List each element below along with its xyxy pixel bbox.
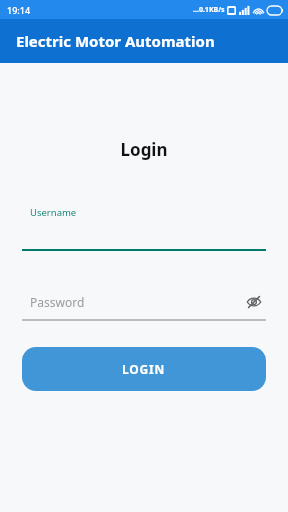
button[interactable]: Password [22,291,266,321]
staticText: Login [0,138,288,161]
staticText: Username [30,206,77,219]
staticText: ...0.1KB/s [193,5,225,15]
staticText: Electric Motor Automation [16,31,215,51]
button[interactable]: Toggle password visibility [242,291,266,313]
staticText: LOGIN [122,361,166,377]
staticText: 19:14 [7,4,31,16]
button[interactable]: LOGIN [22,347,266,391]
button[interactable]: Username [22,206,266,251]
staticText: Password [30,294,85,310]
